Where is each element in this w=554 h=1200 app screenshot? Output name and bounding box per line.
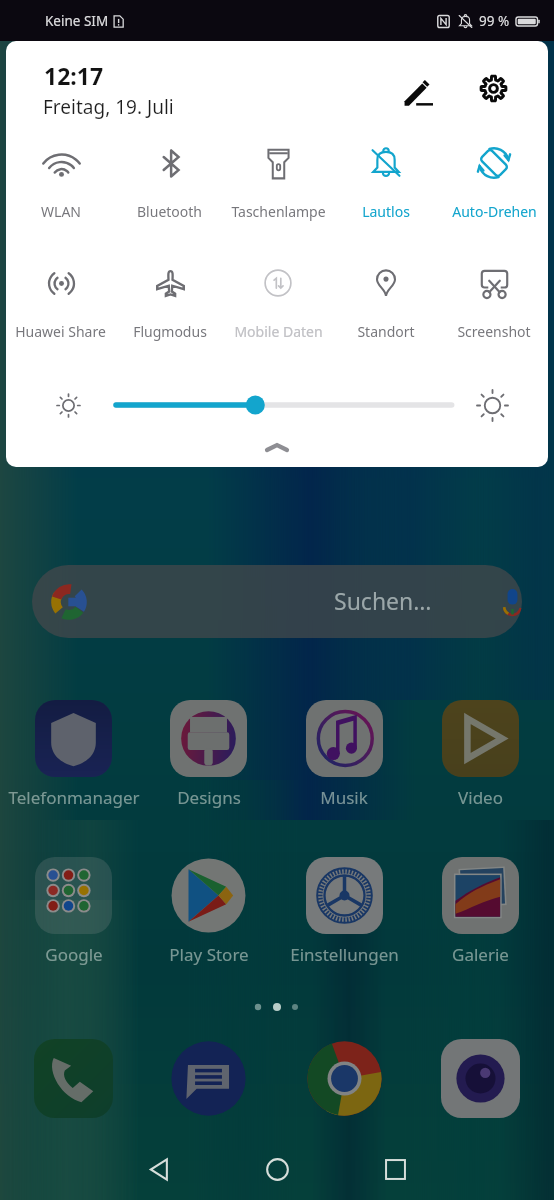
button[interactable]: Helligkeit erhöhen bbox=[465, 378, 519, 432]
button[interactable]: Helligkeit verringern bbox=[41, 378, 95, 432]
button[interactable]: Auto-Drehen bbox=[440, 142, 548, 238]
button[interactable]: Zurück bbox=[120, 1138, 198, 1200]
button[interactable]: dialer bbox=[6, 1039, 141, 1118]
button[interactable]: Erweitern bbox=[6, 427, 548, 467]
button[interactable]: Mobile Daten bbox=[224, 262, 332, 358]
staticText: Play Store bbox=[169, 943, 249, 966]
staticText: Einstellungen bbox=[290, 943, 399, 966]
staticText: Suchen… bbox=[334, 585, 432, 616]
staticText: Google bbox=[45, 943, 103, 966]
staticText: Mobile Daten bbox=[234, 322, 323, 341]
staticText: Flugmodus bbox=[133, 322, 207, 341]
staticText: Musik bbox=[320, 786, 368, 809]
staticText: Lautlos bbox=[362, 202, 410, 221]
staticText: 99 % bbox=[479, 12, 510, 30]
staticText: Auto-Drehen bbox=[452, 202, 537, 221]
button[interactable]: messages bbox=[141, 1039, 276, 1118]
button[interactable]: Helligkeit bbox=[102, 383, 468, 427]
button[interactable]: Bluetooth bbox=[115, 142, 224, 238]
staticText: Designs bbox=[177, 786, 241, 809]
button[interactable]: WLAN bbox=[6, 142, 115, 238]
button[interactable]: Suchen… bbox=[32, 565, 522, 638]
button[interactable]: Flugmodus bbox=[115, 262, 224, 358]
staticText: Video bbox=[458, 786, 503, 809]
staticText: Taschenlampe bbox=[231, 202, 326, 221]
button[interactable]: Huawei Share bbox=[6, 262, 115, 358]
button[interactable]: Taschenlampe bbox=[224, 142, 332, 238]
button[interactable]: Google bbox=[6, 857, 141, 966]
button[interactable]: Einstellungen bbox=[276, 857, 412, 966]
button[interactable]: Einstellungen bbox=[467, 62, 519, 114]
staticText: Huawei Share bbox=[15, 322, 106, 341]
staticText: Standort bbox=[357, 322, 415, 341]
staticText: Bluetooth bbox=[137, 202, 202, 221]
staticText: Freitag, 19. Juli bbox=[43, 94, 174, 120]
button[interactable]: Musik bbox=[276, 700, 412, 809]
button[interactable]: Telefonmanager bbox=[6, 700, 141, 809]
button[interactable]: Designs bbox=[141, 700, 276, 809]
staticText: Telefonmanager bbox=[8, 786, 140, 809]
staticText: Galerie bbox=[452, 943, 509, 966]
button[interactable]: Startbildschirm bbox=[238, 1138, 316, 1200]
button[interactable]: chrome bbox=[276, 1039, 412, 1118]
button[interactable]: Play Store bbox=[141, 857, 276, 966]
button[interactable]: camera bbox=[412, 1039, 548, 1118]
button[interactable]: Bearbeiten bbox=[392, 65, 444, 117]
staticText: Screenshot bbox=[457, 322, 531, 341]
staticText: 12:17 bbox=[44, 60, 104, 91]
button[interactable]: Galerie bbox=[412, 857, 548, 966]
button[interactable]: Lautlos bbox=[332, 142, 440, 238]
staticText: Keine SIM bbox=[45, 12, 109, 30]
button[interactable]: Letzte Apps bbox=[356, 1138, 434, 1200]
button[interactable]: Video bbox=[412, 700, 548, 809]
button[interactable]: Screenshot bbox=[440, 262, 548, 358]
button[interactable]: Standort bbox=[332, 262, 440, 358]
staticText: WLAN bbox=[41, 202, 81, 221]
